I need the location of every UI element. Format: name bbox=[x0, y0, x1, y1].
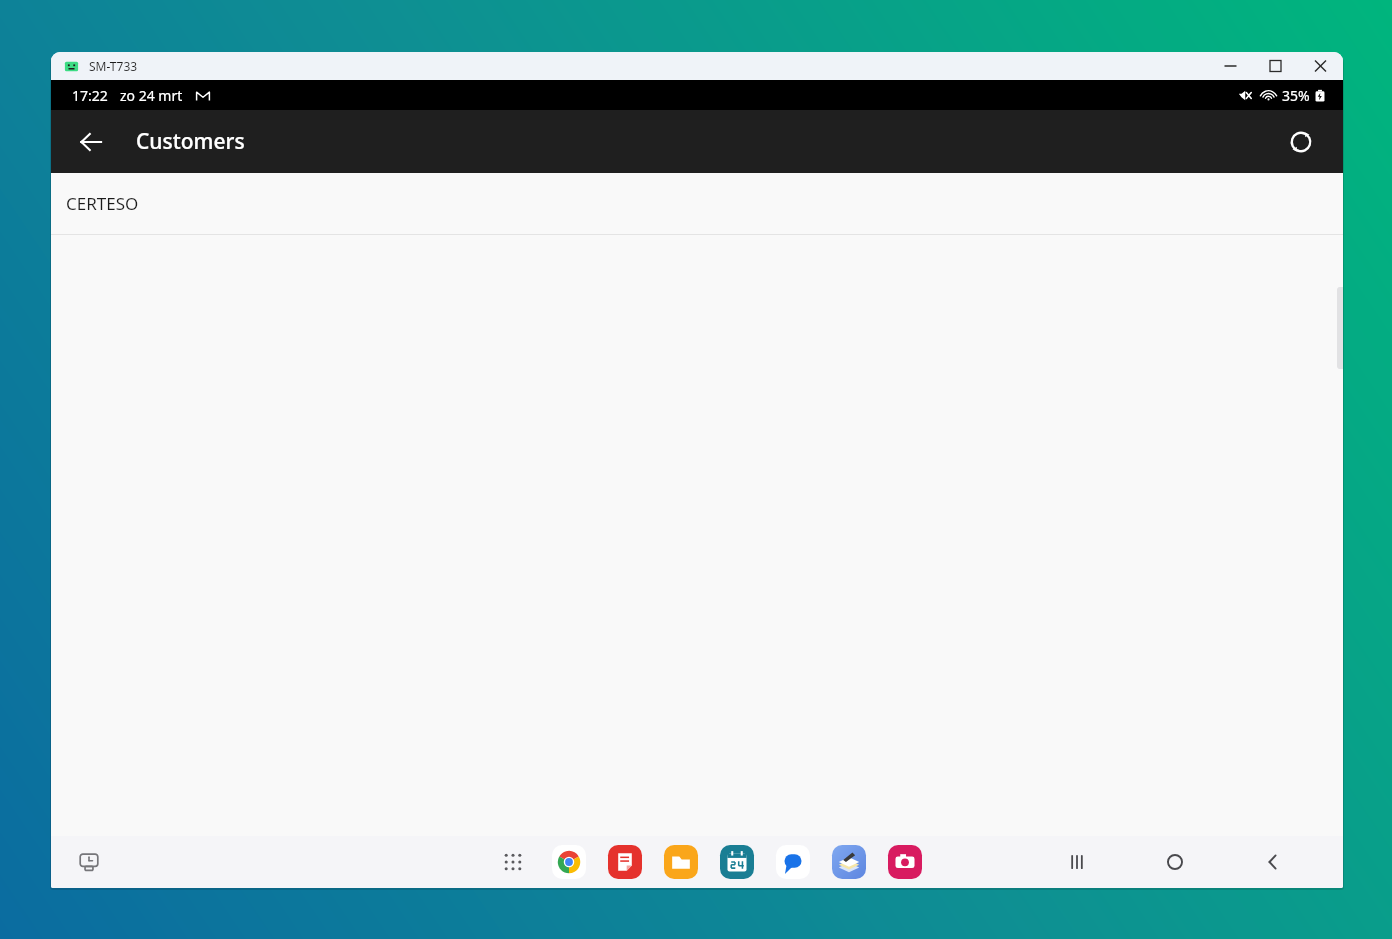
staticText: 17:22 bbox=[72, 86, 108, 105]
button[interactable]: Home bbox=[1153, 840, 1197, 884]
button[interactable]: Back bbox=[65, 116, 117, 168]
staticText: SM-T733 bbox=[89, 58, 138, 74]
staticText: CERTESO bbox=[66, 192, 139, 215]
button[interactable]: Close bbox=[1298, 52, 1343, 80]
button[interactable]: Recent tasks bbox=[69, 842, 109, 882]
button[interactable]: CERTESO bbox=[51, 173, 1343, 234]
staticText: Customers bbox=[136, 127, 245, 156]
button[interactable]: Samsung Notes bbox=[828, 841, 870, 883]
button[interactable]: Refresh bbox=[1275, 116, 1327, 168]
button[interactable]: Recents bbox=[1055, 840, 1099, 884]
button[interactable]: Minimize bbox=[1208, 52, 1253, 80]
button[interactable]: Back bbox=[1251, 840, 1295, 884]
button[interactable]: Chrome bbox=[548, 841, 590, 883]
staticText: 35% bbox=[1282, 86, 1310, 105]
button[interactable]: Messages bbox=[772, 841, 814, 883]
button[interactable]: Camera bbox=[884, 841, 926, 883]
button[interactable]: All apps bbox=[492, 841, 534, 883]
staticText: zo 24 mrt bbox=[120, 86, 183, 105]
button[interactable]: Notes bbox=[604, 841, 646, 883]
button[interactable]: Maximize bbox=[1253, 52, 1298, 80]
button[interactable]: My Files bbox=[660, 841, 702, 883]
button[interactable]: Calendar bbox=[716, 841, 758, 883]
